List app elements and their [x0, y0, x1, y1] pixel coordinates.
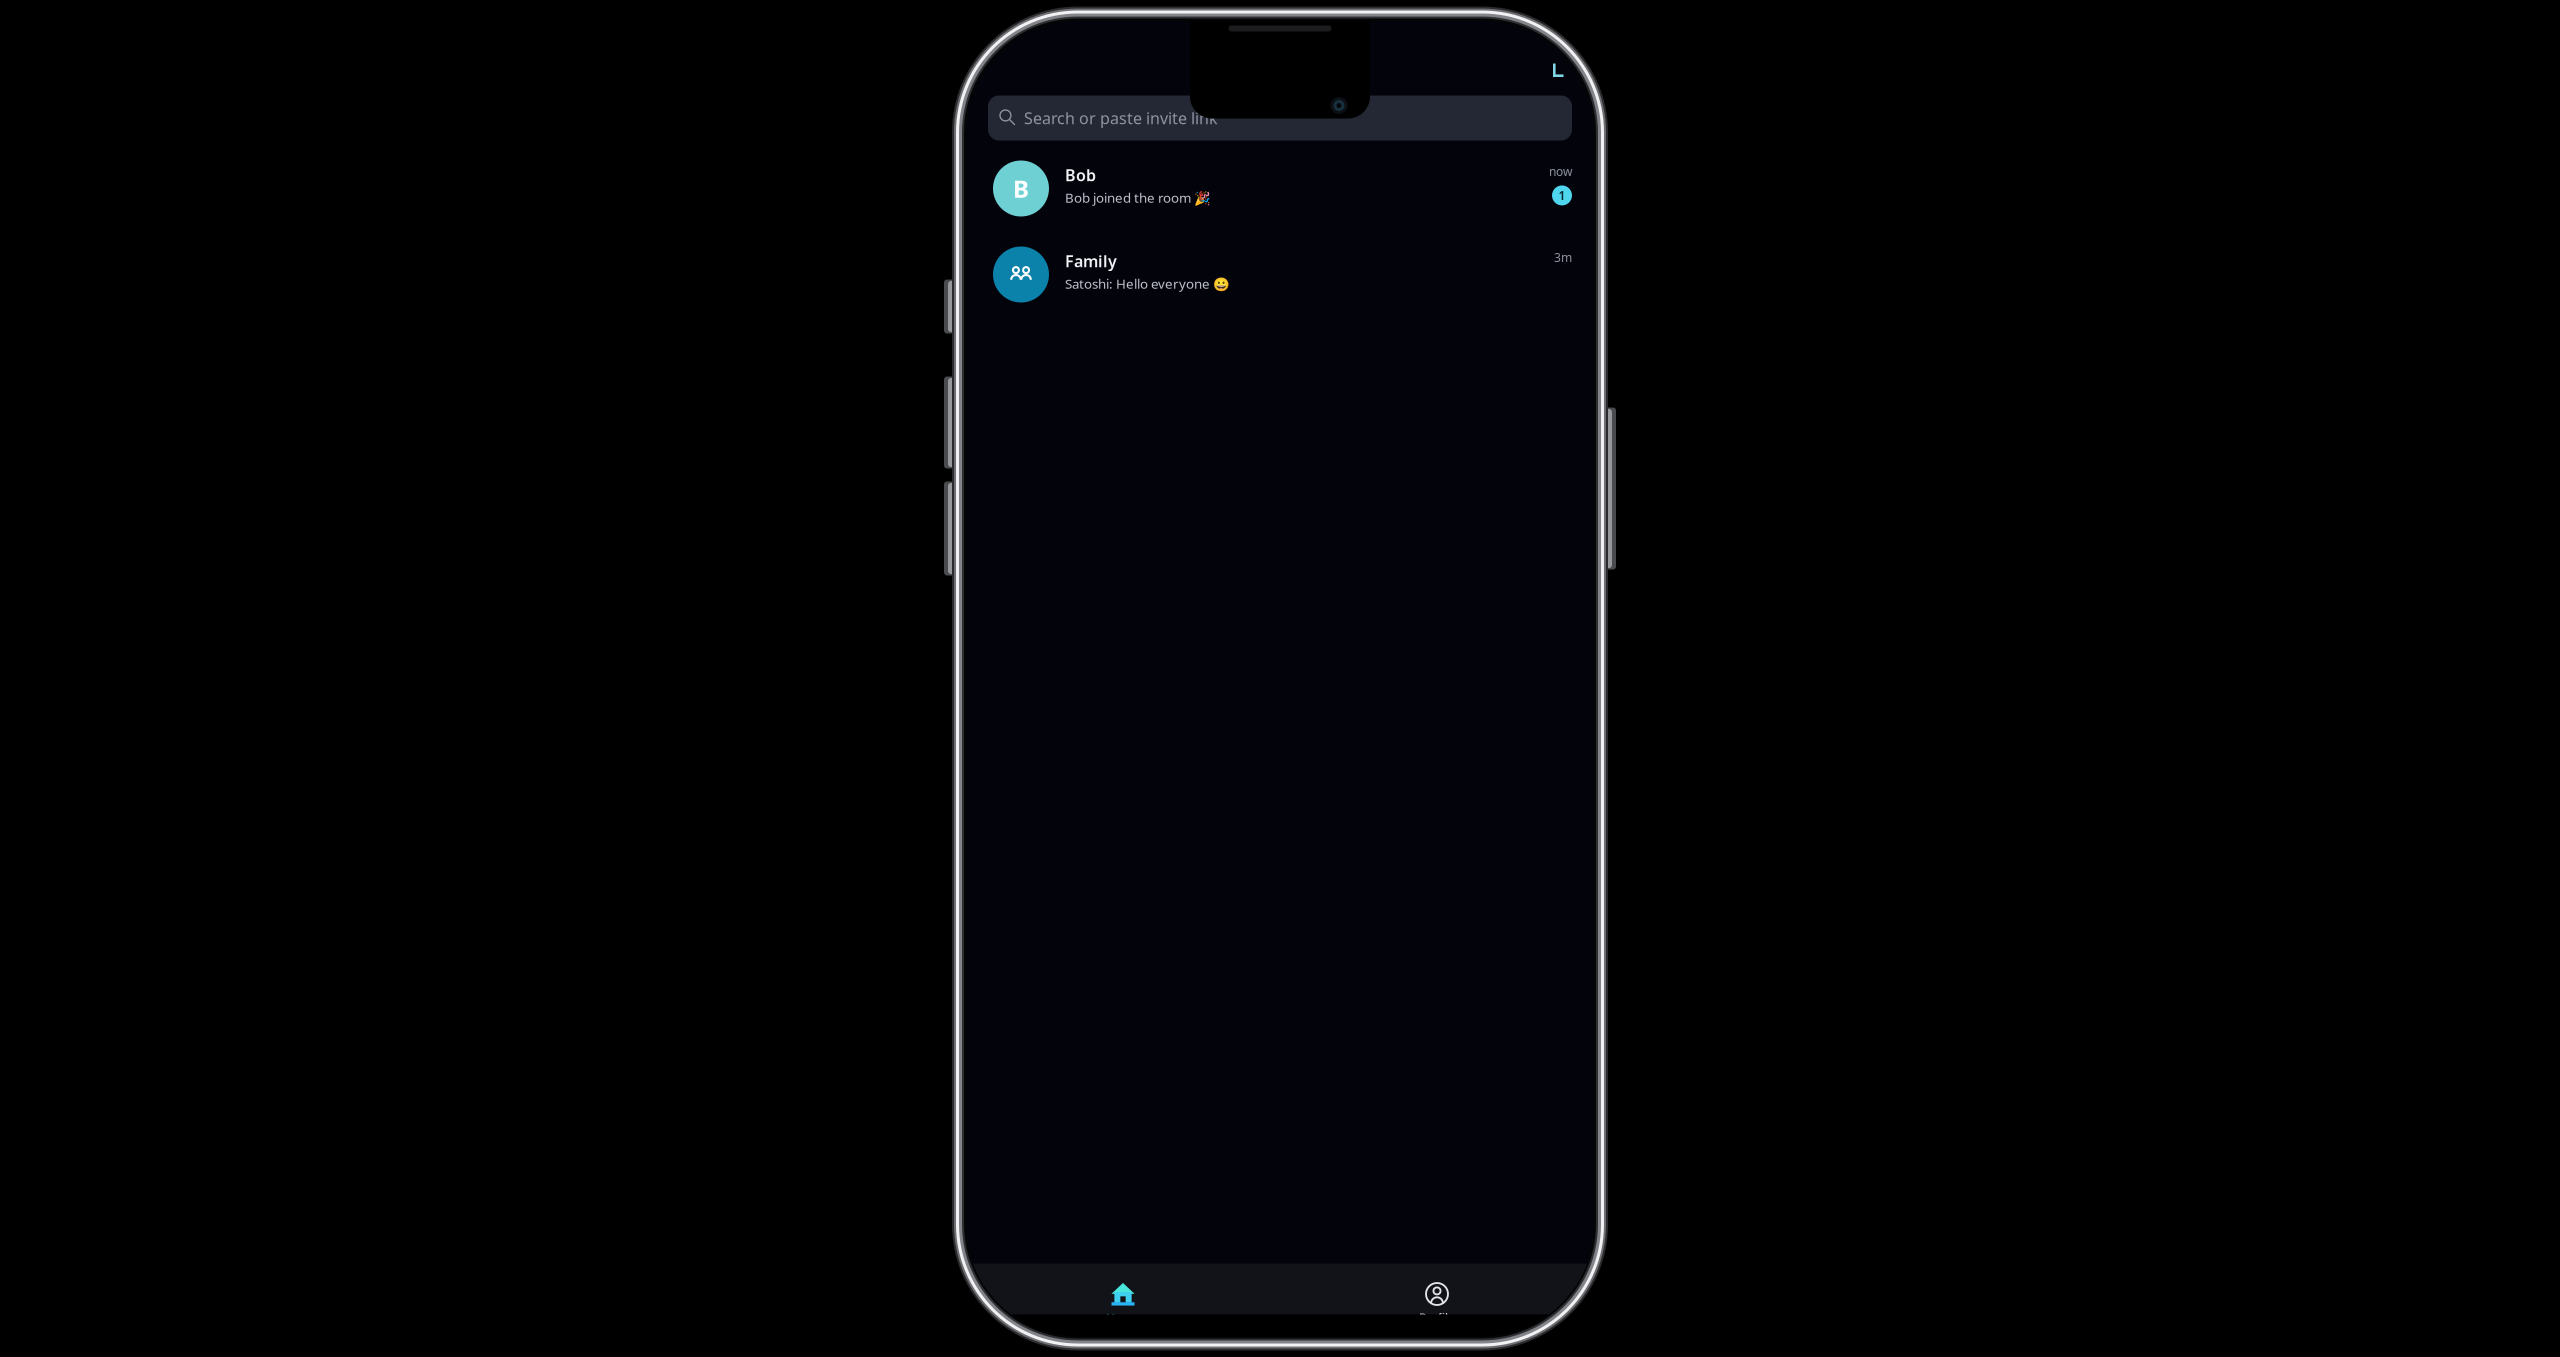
- staticText: Bob: [1065, 164, 1096, 186]
- staticText: Family: [1065, 250, 1117, 272]
- staticText: 1: [1558, 187, 1565, 203]
- staticText: Home: [1106, 1310, 1140, 1326]
- staticText: Satoshi: Hello everyone 😀: [1065, 275, 1230, 292]
- staticText: Profile: [1419, 1310, 1455, 1326]
- button[interactable]: B: [966, 160, 1594, 216]
- button[interactable]: Profile: [1280, 1264, 1594, 1326]
- staticText: now: [1549, 163, 1572, 179]
- button[interactable]: Home: [966, 1263, 1280, 1326]
- button[interactable]: Family: [966, 246, 1594, 302]
- staticText: B: [1013, 173, 1029, 204]
- staticText: Search or paste invite link: [1024, 107, 1218, 129]
- staticText: Bob joined the room 🎉: [1065, 189, 1211, 206]
- staticText: 3m: [1554, 249, 1572, 265]
